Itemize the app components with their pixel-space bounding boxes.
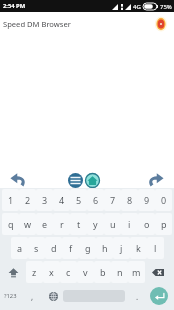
- button[interactable]: 6: [87, 189, 104, 211]
- staticText: 7: [110, 194, 116, 206]
- button[interactable]: e: [36, 213, 53, 235]
- staticText: f: [69, 242, 73, 254]
- button[interactable]: 3: [36, 189, 53, 211]
- staticText: h: [102, 242, 108, 254]
- staticText: s: [34, 242, 39, 254]
- staticText: n: [117, 266, 123, 278]
- button[interactable]: t: [70, 213, 87, 235]
- staticText: 9: [144, 194, 150, 206]
- staticText: ,: [31, 291, 34, 302]
- staticText: g: [85, 242, 91, 254]
- staticText: j: [120, 242, 123, 254]
- button[interactable]: 9: [138, 189, 155, 211]
- button[interactable]: 1: [2, 189, 19, 211]
- staticText: v: [83, 266, 88, 278]
- staticText: q: [8, 218, 14, 230]
- button[interactable]: h: [96, 237, 113, 259]
- button[interactable]: j: [113, 237, 130, 259]
- button[interactable]: .: [125, 284, 149, 308]
- button[interactable]: ?123: [0, 284, 21, 308]
- staticText: d: [51, 242, 57, 254]
- button[interactable]: Enter: [146, 284, 171, 308]
- button[interactable]: 8: [121, 189, 138, 211]
- button[interactable]: Forward: [146, 170, 166, 190]
- staticText: .: [136, 291, 139, 302]
- button[interactable]: z: [26, 261, 43, 283]
- button[interactable]: Account: [154, 17, 168, 31]
- button[interactable]: r: [53, 213, 70, 235]
- staticText: Speed DM Browser: [3, 19, 71, 29]
- staticText: p: [161, 218, 167, 230]
- button[interactable]: x: [43, 261, 60, 283]
- staticText: c: [66, 266, 71, 278]
- button[interactable]: i: [121, 213, 138, 235]
- button[interactable]: p: [155, 213, 172, 235]
- button[interactable]: v: [77, 261, 94, 283]
- button[interactable]: g: [79, 237, 96, 259]
- button[interactable]: Language: [43, 284, 63, 308]
- staticText: i: [128, 218, 131, 230]
- staticText: r: [60, 218, 64, 230]
- button[interactable]: y: [87, 213, 104, 235]
- staticText: z: [32, 266, 37, 278]
- button[interactable]: o: [138, 213, 155, 235]
- button[interactable]: u: [104, 213, 121, 235]
- staticText: m: [132, 266, 141, 278]
- staticText: 75%: [160, 3, 172, 11]
- staticText: x: [49, 266, 54, 278]
- staticText: ?123: [4, 292, 17, 300]
- button[interactable]: s: [28, 237, 45, 259]
- button[interactable]: Back: [8, 170, 28, 190]
- staticText: 2: [25, 194, 31, 206]
- button[interactable]: b: [94, 261, 111, 283]
- staticText: 8: [127, 194, 133, 206]
- button[interactable]: Shift: [1, 261, 25, 283]
- staticText: y: [93, 218, 98, 230]
- staticText: 2:54 PM: [3, 2, 26, 10]
- staticText: 6: [93, 194, 99, 206]
- staticText: 0: [161, 194, 167, 206]
- staticText: e: [42, 218, 48, 230]
- staticText: l: [154, 242, 157, 254]
- staticText: w: [24, 218, 32, 230]
- staticText: t: [77, 218, 81, 230]
- staticText: 1: [8, 194, 14, 206]
- button[interactable]: w: [19, 213, 36, 235]
- staticText: o: [144, 218, 150, 230]
- staticText: b: [100, 266, 106, 278]
- button[interactable]: a: [11, 237, 28, 259]
- button[interactable]: d: [45, 237, 62, 259]
- button[interactable]: 0: [155, 189, 172, 211]
- button[interactable]: f: [62, 237, 79, 259]
- button[interactable]: 4: [53, 189, 70, 211]
- button[interactable]: Backspace: [146, 261, 170, 283]
- button[interactable]: 2: [19, 189, 36, 211]
- staticText: k: [136, 242, 141, 254]
- staticText: 5: [76, 194, 82, 206]
- staticText: u: [110, 218, 116, 230]
- button[interactable]: k: [130, 237, 147, 259]
- button[interactable]: c: [60, 261, 77, 283]
- button[interactable]: ,: [21, 284, 43, 308]
- button[interactable]: n: [111, 261, 128, 283]
- button[interactable]: m: [128, 261, 145, 283]
- button[interactable]: Menu: [67, 172, 84, 189]
- button[interactable]: q: [2, 213, 19, 235]
- button[interactable]: 5: [70, 189, 87, 211]
- button[interactable]: Home: [84, 172, 101, 189]
- staticText: 4G: [133, 3, 141, 11]
- staticText: 4: [59, 194, 65, 206]
- button[interactable]: l: [147, 237, 164, 259]
- staticText: 3: [42, 194, 48, 206]
- staticText: a: [17, 242, 23, 254]
- button[interactable]: 7: [104, 189, 121, 211]
